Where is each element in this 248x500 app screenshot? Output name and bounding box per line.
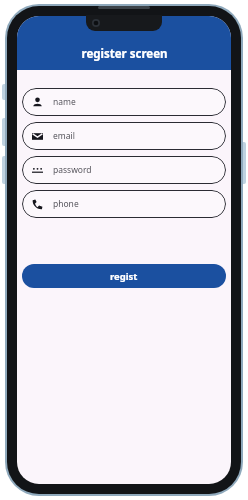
staticText: regist [110,270,138,283]
button[interactable]: phone [22,190,226,218]
staticText: register screen [81,46,168,62]
button[interactable]: name [22,88,226,116]
staticText: password [53,164,92,176]
button[interactable]: password [22,156,226,184]
staticText: name [53,96,76,108]
button[interactable]: email [22,122,226,150]
button[interactable]: regist [22,264,226,288]
staticText: email [53,130,75,142]
staticText: phone [53,198,79,210]
